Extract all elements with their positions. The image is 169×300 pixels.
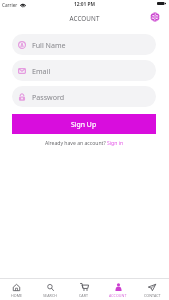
staticText: Sign Up (71, 120, 97, 129)
button[interactable]: HOME (0, 283, 33, 300)
staticText: CONTACT (144, 293, 161, 298)
staticText: Email (32, 66, 51, 76)
button[interactable]: CART (67, 283, 101, 300)
button[interactable]: SEARCH (33, 283, 67, 300)
staticText: Carrier (2, 2, 18, 8)
button[interactable]: Email (12, 60, 156, 81)
staticText: CART (79, 293, 89, 298)
staticText: SEARCH (43, 293, 58, 298)
button[interactable]: ACCOUNT (101, 283, 135, 300)
button[interactable]: Settings (148, 10, 162, 24)
staticText: Password (32, 92, 65, 102)
button[interactable]: Full Name (12, 34, 156, 55)
staticText: 12:01 PM (74, 1, 96, 8)
staticText: HOME (11, 293, 23, 298)
staticText: Sign in (107, 140, 124, 147)
staticText: ACCOUNT (0, 14, 169, 23)
staticText: ACCOUNT (109, 293, 127, 298)
button[interactable]: Sign in (107, 140, 124, 147)
staticText: Full Name (32, 40, 66, 50)
staticText: Already have an account? (45, 140, 107, 147)
button[interactable]: Password (12, 86, 156, 107)
button[interactable]: CONTACT (135, 283, 169, 300)
button[interactable]: Sign Up (12, 114, 156, 134)
